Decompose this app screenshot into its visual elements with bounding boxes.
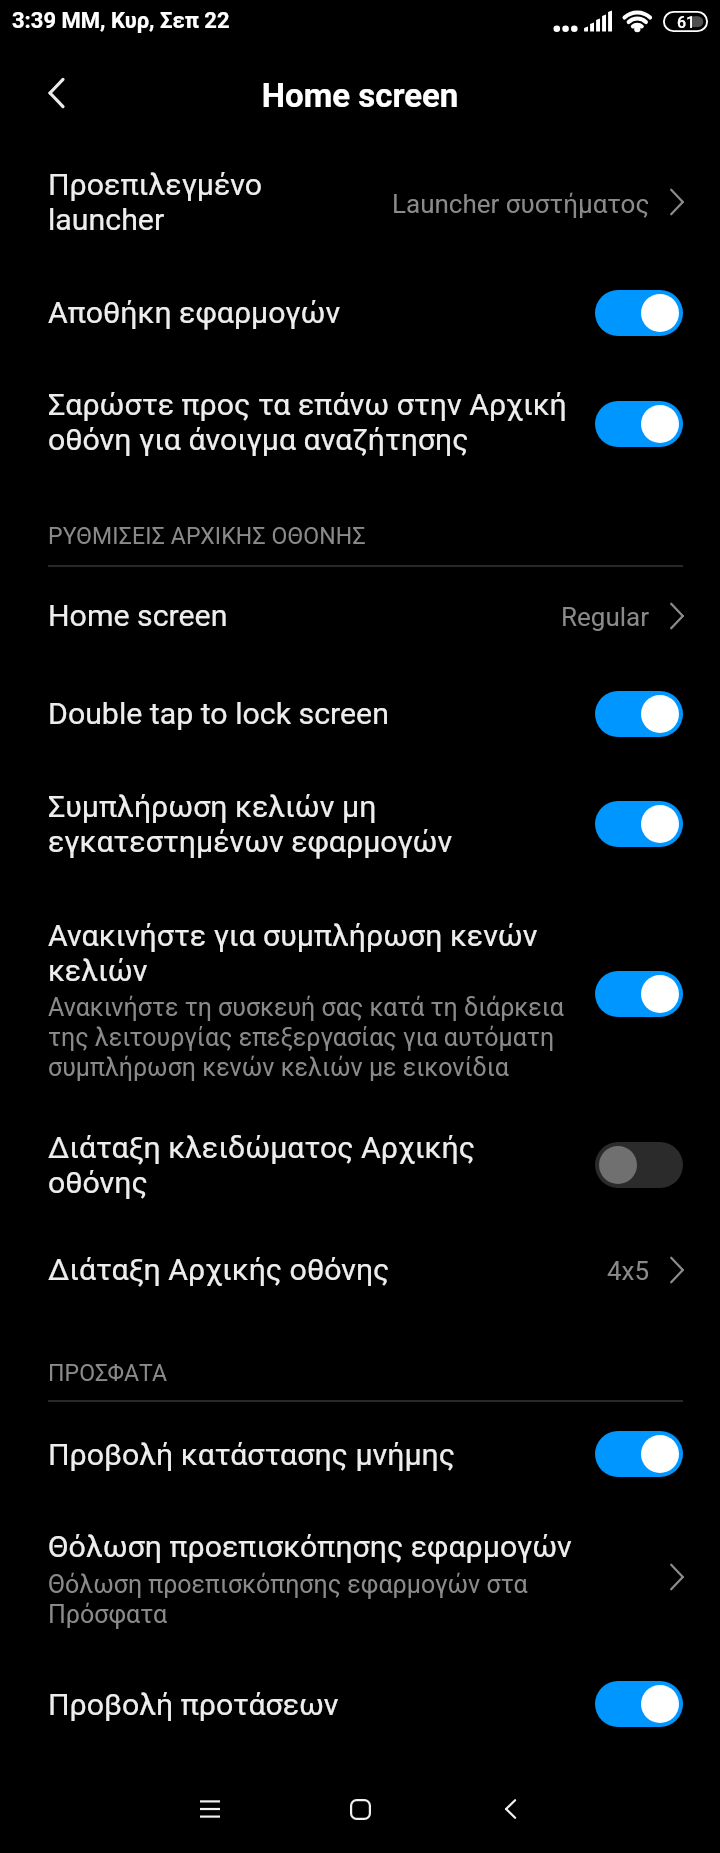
staticText: Συμπλήρωση κελιών μη εγκατεστημένων εφαρ… [48,789,453,859]
button[interactable]: Back [26,64,84,122]
staticText: Προβολή κατάστασης μνήμης [48,1437,456,1473]
button[interactable]: Back [480,1779,540,1839]
button[interactable]: Switch on [595,971,683,1017]
staticText: Προεπιλεγμένο launcher [48,167,263,237]
button[interactable]: Switch on [595,401,683,447]
button[interactable]: Προβολή προτάσεων [0,1650,720,1760]
button[interactable]: Switch on [595,1431,683,1477]
button[interactable]: Switch on [595,290,683,336]
staticText: Σαρώστε προς τα επάνω στην Αρχική οθόνη … [48,387,567,457]
staticText: 3:39 ΜΜ, Κυρ, Σεπ 22 [12,8,230,34]
button[interactable]: Διάταξη Αρχικής οθόνης [0,1222,720,1320]
staticText: Home screen [0,76,720,115]
button[interactable]: Switch on [595,691,683,737]
staticText: Προβολή προτάσεων [48,1687,339,1723]
staticText: 61 [677,13,696,32]
button[interactable]: Switch on [595,801,683,847]
button[interactable]: Αποθήκη εφαρμογών [0,265,720,360]
staticText: Launcher συστήματος [392,189,650,219]
button[interactable]: Διάταξη κλειδώματος Αρχικής οθόνης [0,1100,720,1222]
button[interactable]: Θόλωση προεπισκόπησης εφαρμογών [0,1500,720,1650]
staticText: Ανακινήστε τη συσκευή σας κατά τη διάρκε… [48,993,564,1082]
button[interactable]: Home screen [0,568,720,660]
staticText: Διάταξη κλειδώματος Αρχικής οθόνης [48,1130,475,1200]
button[interactable]: Προεπιλεγμένο launcher [0,140,720,265]
staticText: Regular [561,602,650,632]
button[interactable]: Home [330,1779,390,1839]
staticText: Home screen [48,598,228,634]
staticText: ΡΥΘΜΙΣΕΙΣ ΑΡΧΙΚΗΣ ΟΘΟΝΗΣ [48,523,366,550]
staticText: Ανακινήστε για συμπλήρωση κενών κελιών [48,918,538,988]
staticText: Double tap to lock screen [48,696,389,732]
staticText: Θόλωση προεπισκόπησης εφαρμογών [48,1529,572,1565]
staticText: ΠΡΟΣΦΑΤΑ [48,1360,168,1387]
button[interactable]: Double tap to lock screen [0,660,720,760]
button[interactable]: Switch off [595,1142,683,1188]
button[interactable]: Switch on [595,1681,683,1727]
staticText: Αποθήκη εφαρμογών [48,295,341,331]
button[interactable]: Συμπλήρωση κελιών μη εγκατεστημένων εφαρ… [0,760,720,880]
button[interactable]: Recent apps [180,1779,240,1839]
staticText: 4x5 [607,1256,650,1286]
button[interactable]: Σαρώστε προς τα επάνω στην Αρχική οθόνη … [0,360,720,490]
button[interactable]: Προβολή κατάστασης μνήμης [0,1404,720,1500]
staticText: Διάταξη Αρχικής οθόνης [48,1252,390,1288]
button[interactable]: Ανακινήστε για συμπλήρωση κενών κελιών [0,880,720,1100]
staticText: Θόλωση προεπισκόπησης εφαρμογών στα Πρόσ… [48,1570,528,1629]
